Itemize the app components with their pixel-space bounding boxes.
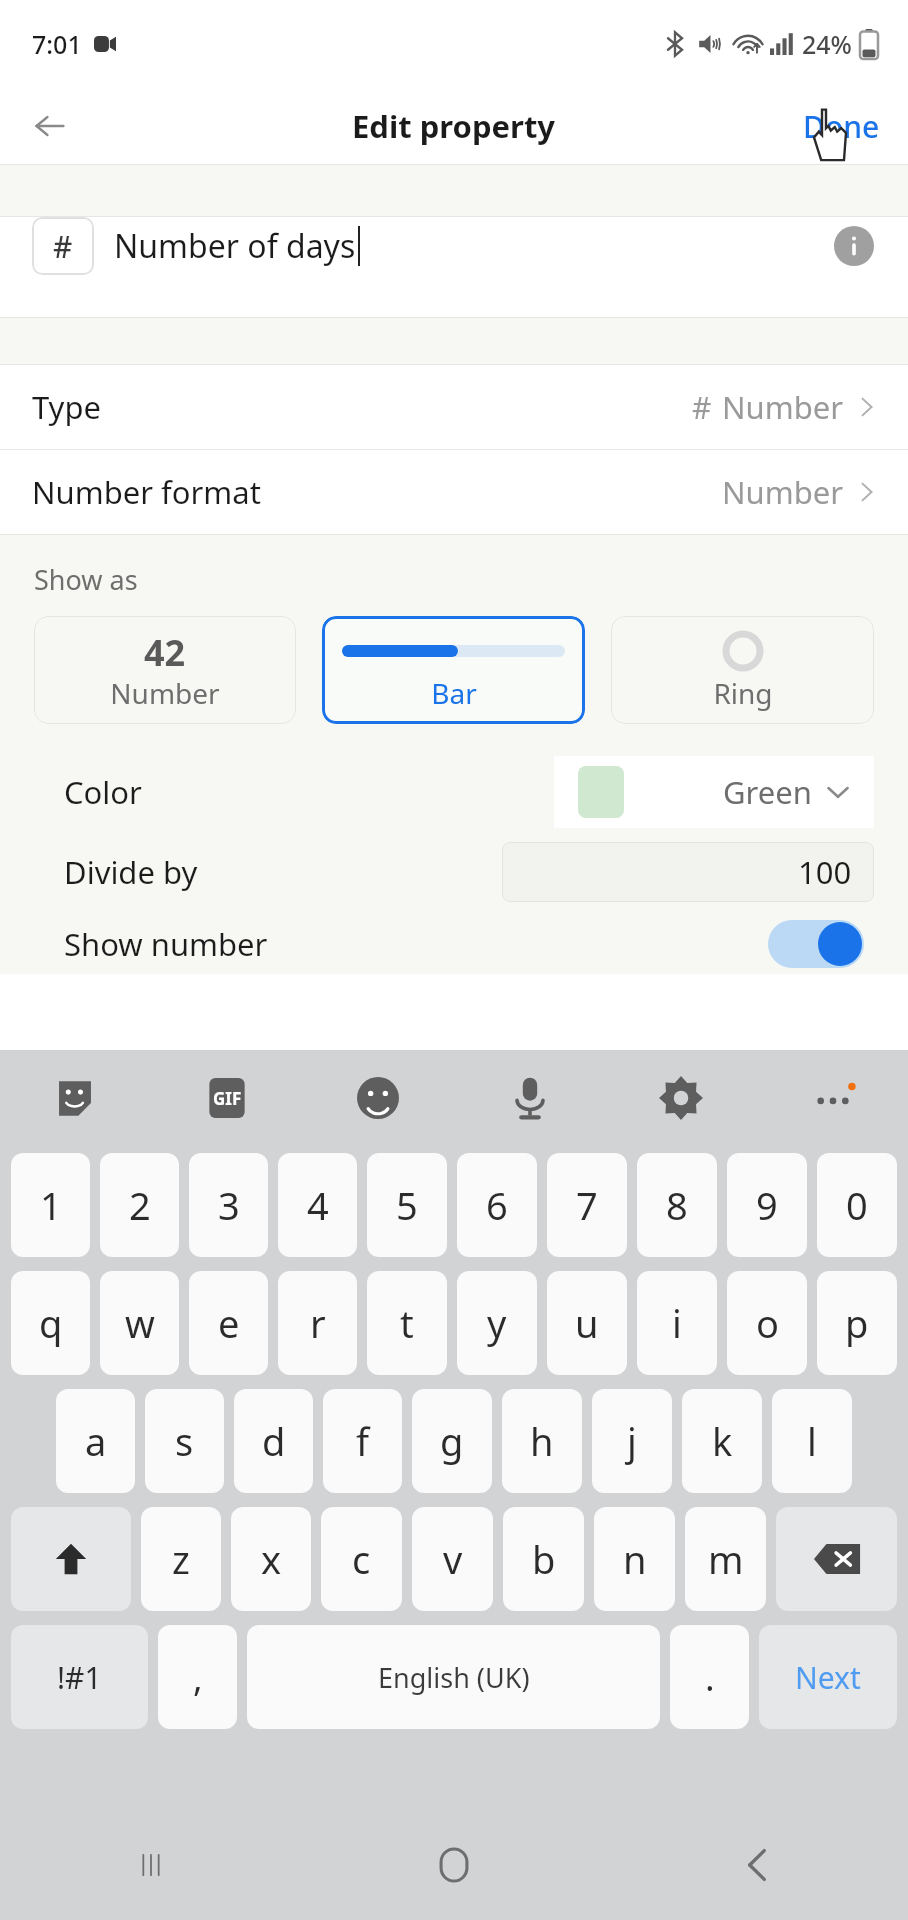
- button[interactable]: h: [502, 1389, 582, 1493]
- button[interactable]: Bar: [322, 616, 585, 724]
- button[interactable]: 42: [34, 616, 296, 724]
- button[interactable]: c: [321, 1507, 402, 1611]
- button[interactable]: 1: [11, 1153, 90, 1257]
- staticText: s: [175, 1415, 194, 1467]
- button[interactable]: Keyboard settings: [648, 1065, 714, 1131]
- button[interactable]: p: [817, 1271, 897, 1375]
- button[interactable]: b: [503, 1507, 584, 1611]
- button[interactable]: Voice input: [497, 1065, 563, 1131]
- button[interactable]: Back: [20, 96, 80, 156]
- button[interactable]: n: [594, 1507, 675, 1611]
- button[interactable]: s: [145, 1389, 224, 1493]
- button[interactable]: 100: [502, 842, 874, 902]
- staticText: Number format: [32, 471, 261, 513]
- staticText: #: [53, 226, 73, 267]
- button[interactable]: 5: [367, 1153, 447, 1257]
- button[interactable]: .: [670, 1625, 749, 1729]
- staticText: Divide by: [64, 851, 198, 893]
- button[interactable]: Next: [759, 1625, 897, 1729]
- staticText: 6: [486, 1179, 508, 1231]
- button[interactable]: a: [56, 1389, 135, 1493]
- staticText: Number of days: [114, 224, 356, 268]
- staticText: n: [623, 1533, 647, 1585]
- staticText: z: [172, 1533, 190, 1585]
- button[interactable]: !#1: [11, 1625, 148, 1729]
- button[interactable]: Emoji: [345, 1065, 411, 1131]
- button[interactable]: g: [412, 1389, 492, 1493]
- button[interactable]: x: [231, 1507, 311, 1611]
- button[interactable]: Recent apps: [106, 1820, 196, 1910]
- button[interactable]: w: [100, 1271, 179, 1375]
- button[interactable]: Done: [803, 106, 880, 147]
- staticText: q: [39, 1297, 63, 1349]
- button[interactable]: #: [32, 217, 94, 275]
- button[interactable]: 8: [637, 1153, 717, 1257]
- button[interactable]: m: [685, 1507, 766, 1611]
- button[interactable]: English (UK): [247, 1625, 660, 1729]
- button[interactable]: 9: [727, 1153, 807, 1257]
- button[interactable]: Number format: [0, 450, 908, 534]
- button[interactable]: Shift: [11, 1507, 131, 1611]
- button[interactable]: GIF: [194, 1065, 260, 1131]
- staticText: c: [352, 1533, 371, 1585]
- staticText: 24%: [802, 27, 852, 61]
- staticText: Next: [795, 1657, 861, 1698]
- staticText: o: [756, 1297, 779, 1349]
- button[interactable]: 6: [457, 1153, 537, 1257]
- staticText: Color: [64, 771, 142, 813]
- staticText: Show as: [34, 561, 138, 598]
- button[interactable]: j: [592, 1389, 672, 1493]
- button[interactable]: Backspace: [776, 1507, 897, 1611]
- staticText: Show number: [64, 923, 268, 965]
- button[interactable]: 3: [189, 1153, 268, 1257]
- button[interactable]: v: [412, 1507, 493, 1611]
- button[interactable]: 0: [817, 1153, 897, 1257]
- staticText: 3: [218, 1179, 240, 1231]
- button[interactable]: r: [278, 1271, 357, 1375]
- staticText: i: [672, 1297, 682, 1349]
- staticText: Done: [803, 106, 880, 147]
- button[interactable]: 4: [278, 1153, 357, 1257]
- button[interactable]: q: [11, 1271, 90, 1375]
- button[interactable]: ,: [158, 1625, 237, 1729]
- staticText: t: [400, 1297, 414, 1349]
- staticText: 2: [129, 1179, 151, 1231]
- staticText: r: [310, 1297, 326, 1349]
- staticText: m: [708, 1533, 744, 1585]
- staticText: Number: [722, 471, 844, 513]
- button[interactable]: t: [367, 1271, 447, 1375]
- button[interactable]: Back: [712, 1820, 802, 1910]
- button[interactable]: l: [772, 1389, 852, 1493]
- button[interactable]: [768, 920, 864, 968]
- button[interactable]: Info: [832, 224, 876, 268]
- button[interactable]: k: [682, 1389, 762, 1493]
- staticText: k: [712, 1415, 733, 1467]
- button[interactable]: Home: [409, 1820, 499, 1910]
- staticText: x: [261, 1533, 282, 1585]
- button[interactable]: More options: [800, 1065, 866, 1131]
- button[interactable]: Stickers: [42, 1065, 108, 1131]
- staticText: y: [487, 1297, 507, 1349]
- button[interactable]: Color: [0, 754, 908, 830]
- staticText: f: [356, 1415, 370, 1467]
- staticText: j: [627, 1415, 637, 1467]
- staticText: e: [218, 1297, 240, 1349]
- button[interactable]: e: [189, 1271, 268, 1375]
- button[interactable]: u: [547, 1271, 627, 1375]
- button[interactable]: y: [457, 1271, 537, 1375]
- button[interactable]: o: [727, 1271, 807, 1375]
- staticText: u: [575, 1297, 599, 1349]
- button[interactable]: Green: [554, 756, 874, 828]
- button[interactable]: 2: [100, 1153, 179, 1257]
- staticText: .: [705, 1653, 715, 1702]
- staticText: #: [692, 387, 712, 428]
- staticText: b: [532, 1533, 556, 1585]
- button[interactable]: f: [323, 1389, 402, 1493]
- button[interactable]: d: [234, 1389, 313, 1493]
- button[interactable]: 7: [547, 1153, 627, 1257]
- button[interactable]: z: [141, 1507, 221, 1611]
- button[interactable]: Type: [0, 365, 908, 449]
- button[interactable]: Ring: [611, 616, 874, 724]
- staticText: 9: [756, 1179, 778, 1231]
- button[interactable]: i: [637, 1271, 717, 1375]
